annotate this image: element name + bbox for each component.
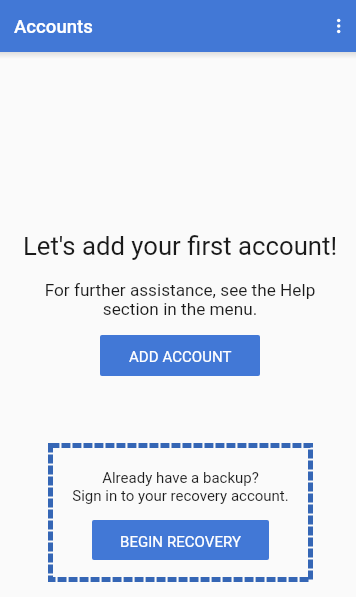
button[interactable]: More options	[312, 4, 356, 48]
staticText: ADD ACCOUNT	[129, 348, 232, 366]
staticText: BEGIN RECOVERY	[120, 533, 241, 551]
staticText: For further assistance, see the Help sec…	[2, 280, 356, 319]
staticText: Let's add your first account!	[2, 231, 356, 261]
staticText: Already have a backup? Sign in to your r…	[72, 469, 289, 504]
button[interactable]: BEGIN RECOVERY	[92, 520, 269, 560]
staticText: Accounts	[14, 16, 93, 38]
button[interactable]: ADD ACCOUNT	[100, 335, 260, 376]
